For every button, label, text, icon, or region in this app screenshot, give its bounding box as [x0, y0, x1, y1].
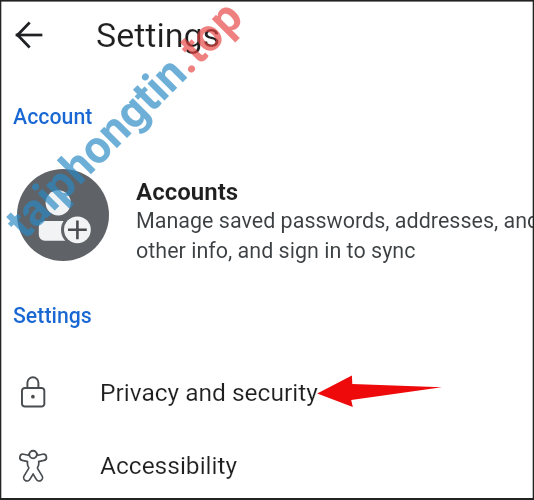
staticText: Manage saved passwords, addresses, and o… — [136, 208, 534, 263]
staticText: Settings — [13, 303, 92, 328]
button[interactable]: Back — [5, 11, 53, 59]
staticText: Accounts — [136, 178, 239, 206]
staticText: Privacy and security — [100, 378, 318, 407]
button[interactable]: Privacy and security — [0, 356, 534, 429]
staticText: Account — [13, 104, 93, 129]
staticText: Settings — [96, 15, 221, 55]
button[interactable]: Accessibility — [0, 429, 534, 500]
staticText: Accessibility — [100, 451, 238, 480]
button[interactable]: Accounts — [0, 160, 534, 272]
